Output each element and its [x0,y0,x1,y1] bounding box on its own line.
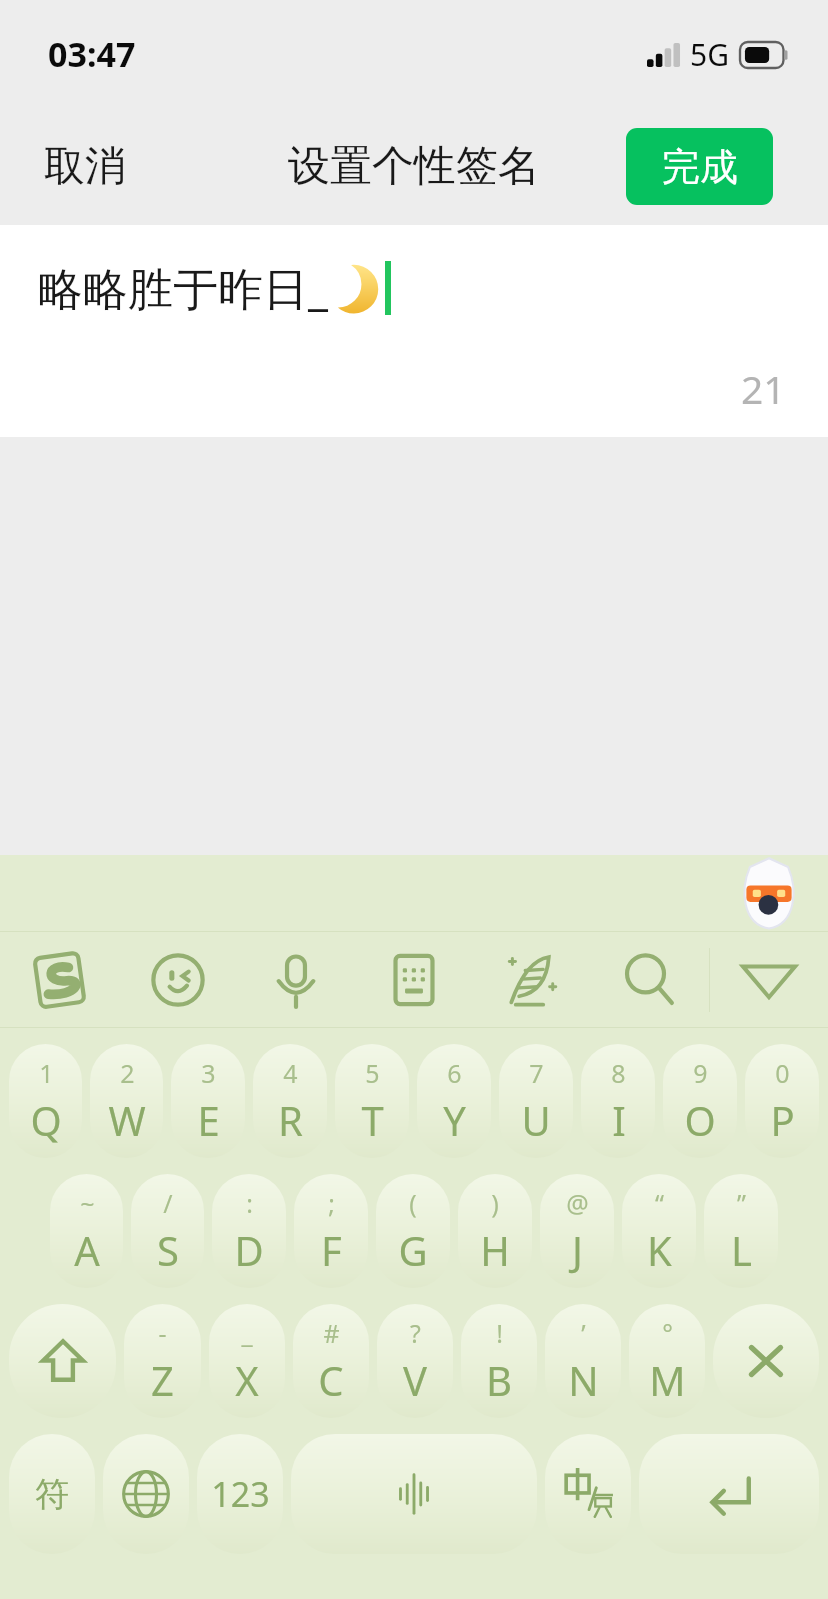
staticText: 123 [211,1471,270,1517]
staticText: ? [410,1316,421,1350]
staticText: ( [409,1186,417,1220]
staticText: Q [30,1093,62,1147]
staticText: W [108,1093,146,1147]
button[interactable]: @ [540,1174,614,1288]
button[interactable]: 5 [335,1044,409,1158]
staticText: S [157,1223,179,1277]
staticText: ’ [581,1316,586,1350]
staticText: 符 [35,1473,69,1516]
button[interactable]: 0 [745,1044,819,1158]
staticText: Y [443,1093,466,1147]
staticText: O [684,1093,716,1147]
staticText: “ [655,1186,664,1220]
staticText: 5 [365,1056,380,1090]
staticText: ) [491,1186,499,1220]
staticText: 0 [775,1056,790,1090]
button[interactable]: Keyboard layout [355,932,473,1027]
button[interactable]: 7 [499,1044,573,1158]
staticText: ; [328,1186,335,1220]
button[interactable]: 3 [171,1044,245,1158]
button[interactable]: 符 [9,1434,95,1554]
button[interactable]: Backspace [713,1304,819,1418]
button[interactable]: _ [209,1304,285,1418]
staticText: 5G [690,34,729,75]
staticText: 03:47 [48,31,136,77]
button[interactable]: ) [458,1174,532,1288]
button[interactable]: ! [461,1304,537,1418]
staticText: K [647,1223,672,1277]
staticText: I [612,1093,626,1147]
staticText: 9 [693,1056,708,1090]
button[interactable]: Emoji [119,932,237,1027]
staticText: 7 [529,1056,544,1090]
button[interactable]: 1 [9,1044,82,1158]
staticText: ! [496,1316,503,1350]
button[interactable]: ° [629,1304,705,1418]
staticText: ” [737,1186,746,1220]
staticText: 2 [120,1056,135,1090]
staticText: R [278,1093,303,1147]
staticText: 设置个性签名 [288,140,540,193]
button[interactable]: ” [704,1174,778,1288]
staticText: D [234,1223,264,1277]
button[interactable]: “ [622,1174,696,1288]
button[interactable]: 2 [90,1044,163,1158]
staticText: 1 [39,1056,54,1090]
staticText: T [361,1093,384,1147]
button[interactable]: 略略胜于昨日_ [0,225,828,437]
button[interactable]: Search [591,932,709,1027]
staticText: F [321,1223,342,1277]
staticText: M [649,1353,686,1407]
staticText: / [163,1186,173,1220]
button[interactable]: - [124,1304,201,1418]
button[interactable]: 6 [417,1044,491,1158]
button[interactable]: Hide keyboard [710,932,828,1027]
staticText: Z [151,1353,174,1407]
staticText: J [572,1223,583,1277]
button[interactable]: 123 [197,1434,283,1554]
button[interactable]: 4 [253,1044,327,1158]
button[interactable]: Handwriting [473,932,591,1027]
staticText: P [770,1093,795,1147]
staticText: U [521,1093,551,1147]
staticText: A [74,1223,100,1277]
staticText: B [486,1353,512,1407]
staticText: H [480,1223,510,1277]
staticText: L [731,1223,752,1277]
staticText: N [568,1353,599,1407]
staticText: C [318,1353,344,1407]
button[interactable]: / [131,1174,204,1288]
button[interactable]: ’ [545,1304,621,1418]
button[interactable]: 取消 [24,127,146,207]
button[interactable]: ; [294,1174,368,1288]
staticText: 完成 [662,143,738,191]
staticText: G [398,1223,428,1277]
button[interactable]: 完成 [626,128,773,205]
staticText: 3 [201,1056,216,1090]
button[interactable]: Sogou assistant [740,856,798,930]
staticText: E [197,1093,220,1147]
button[interactable]: ~ [50,1174,123,1288]
staticText: V [403,1353,427,1407]
staticText: X [235,1353,259,1407]
staticText: _ [241,1316,253,1350]
button[interactable]: Switch language [103,1434,189,1554]
staticText: 4 [283,1056,298,1090]
button[interactable]: Enter [639,1434,819,1554]
button[interactable]: Sogou input [0,932,119,1027]
staticText: ~ [80,1186,95,1220]
button[interactable]: ? [377,1304,453,1418]
button[interactable]: Shift [9,1304,116,1418]
button[interactable]: Voice input [237,932,355,1027]
button[interactable]: : [212,1174,286,1288]
staticText: 6 [447,1056,462,1090]
button[interactable]: ( [376,1174,450,1288]
button[interactable]: 9 [663,1044,737,1158]
button[interactable]: Space [291,1434,537,1554]
button[interactable]: 8 [581,1044,655,1158]
button[interactable]: # [293,1304,369,1418]
button[interactable]: Chinese English toggle [545,1434,631,1554]
staticText: ° [662,1316,673,1350]
staticText: - [158,1316,167,1350]
staticText: 取消 [44,141,126,193]
